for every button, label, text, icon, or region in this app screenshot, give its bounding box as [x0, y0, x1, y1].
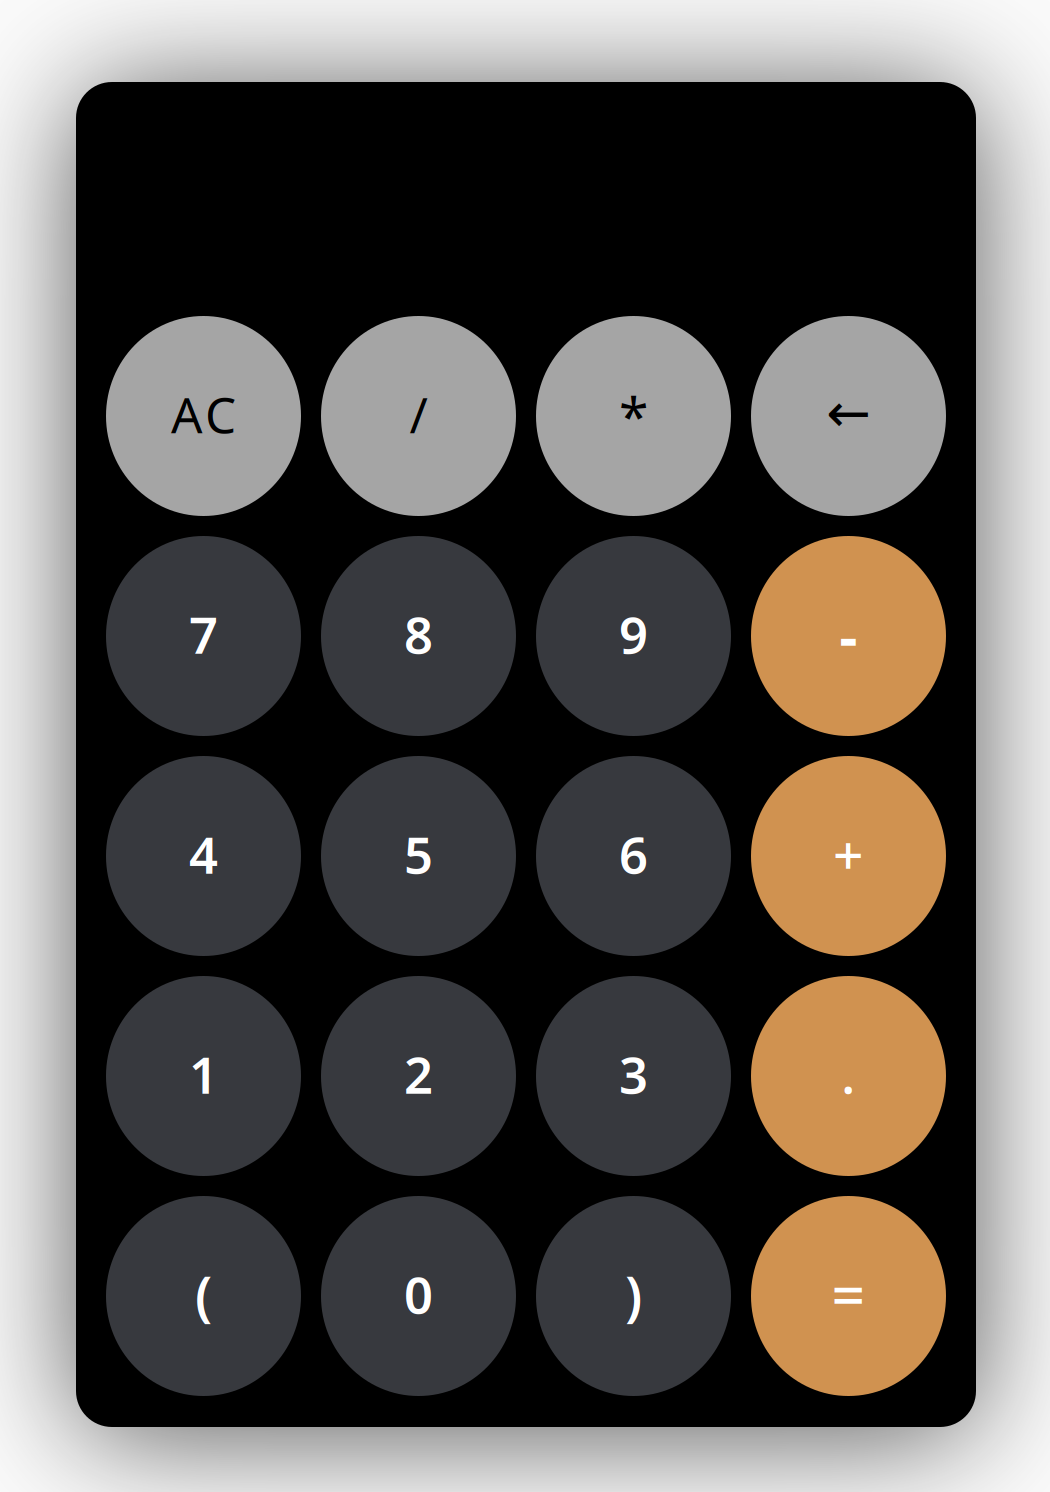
button[interactable]: 7	[106, 536, 301, 736]
button[interactable]: Minus	[751, 536, 946, 736]
staticText: 0	[404, 1260, 433, 1328]
button[interactable]: 5	[321, 756, 516, 956]
staticText: )	[625, 1260, 642, 1330]
staticText: 7	[189, 600, 218, 668]
button[interactable]: Decimal point	[751, 976, 946, 1176]
staticText: /	[409, 381, 427, 447]
staticText: 9	[619, 600, 648, 668]
button[interactable]: 4	[106, 756, 301, 956]
button[interactable]: Backspace	[751, 316, 946, 516]
staticText: 1	[189, 1040, 218, 1108]
button[interactable]: 2	[321, 976, 516, 1176]
button[interactable]: 0	[321, 1196, 516, 1396]
button[interactable]: (	[106, 1196, 301, 1396]
staticText: ←	[826, 383, 871, 443]
button[interactable]: 9	[536, 536, 731, 736]
staticText: *	[619, 380, 648, 450]
button[interactable]: Divide	[321, 316, 516, 516]
button[interactable]: Plus	[751, 756, 946, 956]
staticText: =	[831, 1254, 865, 1332]
staticText: 8	[404, 600, 433, 668]
staticText: (	[195, 1260, 212, 1330]
button[interactable]: All clear	[106, 316, 301, 516]
button[interactable]: Multiply	[536, 316, 731, 516]
button[interactable]: )	[536, 1196, 731, 1396]
button[interactable]: 1	[106, 976, 301, 1176]
button[interactable]: 6	[536, 756, 731, 956]
staticText: +	[833, 819, 864, 889]
staticText: 3	[619, 1040, 648, 1108]
button[interactable]: 3	[536, 976, 731, 1176]
staticText: 6	[619, 820, 648, 888]
staticText: -	[839, 598, 857, 672]
staticText: AC	[171, 381, 236, 447]
staticText: .	[841, 1038, 856, 1108]
staticText: 2	[404, 1040, 433, 1108]
staticText: 5	[404, 820, 433, 888]
button[interactable]: Equals	[751, 1196, 946, 1396]
staticText: 4	[189, 820, 218, 888]
button[interactable]: 8	[321, 536, 516, 736]
